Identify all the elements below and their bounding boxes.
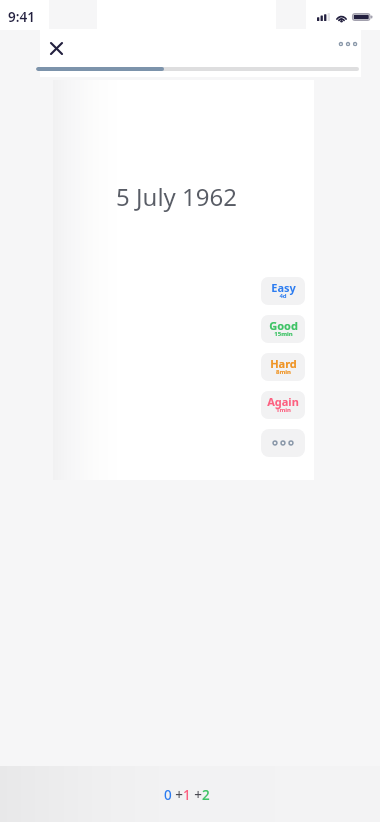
- staticText: 8min: [276, 368, 291, 376]
- staticText: Again: [267, 394, 299, 409]
- button[interactable]: More answers: [261, 429, 305, 457]
- button[interactable]: Easy: [261, 277, 305, 305]
- button[interactable]: Hard: [261, 353, 305, 381]
- staticText: 15min: [274, 330, 293, 338]
- button[interactable]: Again: [261, 391, 305, 419]
- staticText: Easy: [271, 280, 296, 295]
- staticText: 9:41: [8, 8, 35, 26]
- staticText: Hard: [270, 356, 297, 371]
- staticText: 0 +1 +2: [164, 786, 210, 804]
- button[interactable]: 0 +1 +2: [164, 786, 210, 804]
- staticText: Good: [269, 318, 298, 333]
- button[interactable]: Good: [261, 315, 305, 343]
- button[interactable]: More options: [330, 26, 366, 61]
- button[interactable]: Close: [38, 30, 74, 66]
- staticText: 1min: [276, 406, 291, 414]
- staticText: 4d: [279, 292, 287, 300]
- staticText: 5 July 1962: [116, 180, 237, 213]
